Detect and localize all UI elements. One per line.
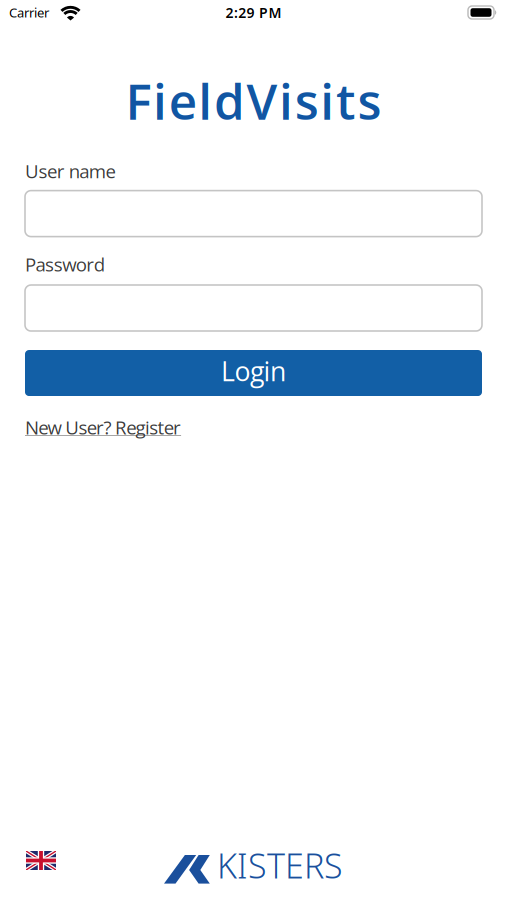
staticText: New User? Register [25, 414, 181, 440]
staticText: User name [25, 158, 115, 184]
staticText: 2:29 PM [226, 3, 281, 22]
staticText: Password [25, 252, 105, 277]
button[interactable]: New User? Register [25, 414, 181, 440]
button[interactable]: Change language [26, 851, 56, 870]
staticText: Login [221, 353, 286, 389]
staticText: KISTERS [217, 842, 343, 888]
button[interactable]: Password [25, 285, 482, 331]
button[interactable]: User name [25, 191, 482, 237]
button[interactable]: Login [25, 350, 482, 396]
staticText: Carrier [9, 4, 49, 21]
staticText: FieldVisits [125, 67, 381, 134]
